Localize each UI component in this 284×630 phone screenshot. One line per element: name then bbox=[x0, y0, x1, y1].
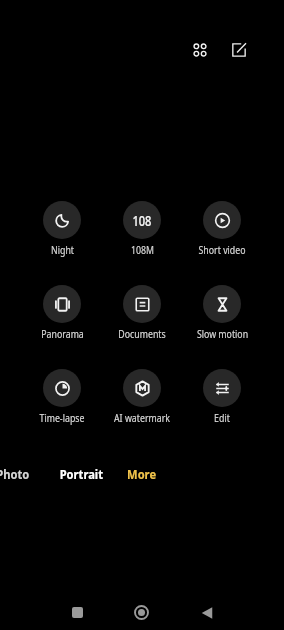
button[interactable]: AI watermark bbox=[102, 369, 182, 425]
button[interactable]: Panorama bbox=[22, 285, 102, 341]
button[interactable]: Time-lapse bbox=[22, 369, 102, 425]
button[interactable]: Edit bbox=[182, 369, 262, 425]
button[interactable]: 108 bbox=[102, 201, 182, 257]
staticText: Panorama bbox=[41, 327, 84, 341]
staticText: Edit bbox=[214, 411, 230, 425]
button[interactable]: Documents bbox=[102, 285, 182, 341]
staticText: 108 bbox=[132, 210, 152, 230]
staticText: Short video bbox=[198, 243, 246, 257]
button[interactable]: Short video bbox=[182, 201, 262, 257]
staticText: AI watermark bbox=[114, 411, 170, 425]
button[interactable]: Portrait bbox=[50, 462, 112, 486]
staticText: Portrait bbox=[60, 466, 103, 482]
button[interactable]: Slow motion bbox=[182, 285, 262, 341]
button[interactable]: Back bbox=[174, 595, 239, 630]
button[interactable]: Recents bbox=[45, 595, 109, 630]
button[interactable]: Home bbox=[109, 595, 174, 630]
staticText: Time-lapse bbox=[39, 411, 85, 425]
button[interactable]: Camera modes bbox=[183, 33, 217, 67]
button[interactable]: Edit bbox=[222, 33, 256, 67]
staticText: 108M bbox=[131, 243, 154, 257]
button[interactable]: Photo bbox=[0, 462, 44, 486]
staticText: Night bbox=[51, 243, 74, 257]
staticText: More bbox=[127, 466, 157, 482]
button[interactable]: More bbox=[111, 462, 173, 486]
staticText: Photo bbox=[0, 466, 30, 482]
button[interactable]: Night bbox=[22, 201, 102, 257]
staticText: Documents bbox=[118, 327, 166, 341]
staticText: Slow motion bbox=[196, 327, 248, 341]
